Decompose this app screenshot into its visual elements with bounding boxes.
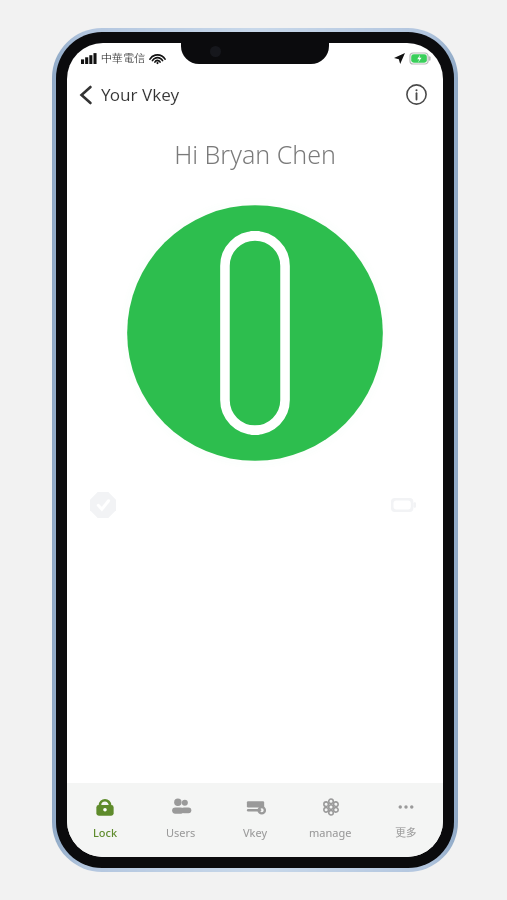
- staticText: 中華電信: [101, 51, 145, 65]
- staticText: manage: [309, 825, 352, 840]
- button[interactable]: Information: [401, 79, 431, 109]
- button[interactable]: Your Vkey: [67, 79, 188, 110]
- staticText: Lock: [93, 825, 118, 840]
- staticText: 更多: [395, 825, 417, 839]
- button[interactable]: Vkey: [218, 783, 293, 857]
- staticText: Hi Bryan Chen: [67, 137, 443, 171]
- button[interactable]: Users: [143, 783, 218, 857]
- staticText: Vkey: [243, 825, 268, 840]
- button[interactable]: Unlock: [119, 197, 391, 469]
- button[interactable]: 更多: [368, 783, 443, 857]
- staticText: Your Vkey: [101, 83, 180, 106]
- button[interactable]: manage: [293, 783, 368, 857]
- staticText: Users: [166, 825, 196, 840]
- button[interactable]: Lock: [67, 783, 143, 857]
